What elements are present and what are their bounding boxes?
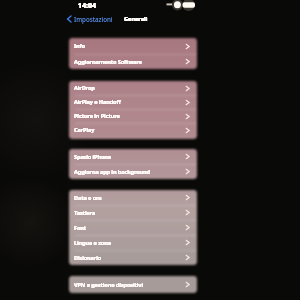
button[interactable]: Tastiera — [69, 205, 197, 220]
staticText: Picture in Picture — [74, 112, 120, 120]
button[interactable]: Impostazioni — [67, 15, 113, 23]
button[interactable]: Picture in Picture — [69, 109, 197, 123]
button[interactable]: Info — [69, 38, 197, 54]
staticText: Tastiera — [74, 209, 96, 217]
staticText: VPN e gestione dispositivi — [74, 281, 143, 289]
staticText: Generali — [124, 15, 148, 23]
button[interactable]: VPN e gestione dispositivi — [69, 276, 197, 293]
other: Status icons — [166, 2, 196, 10]
button[interactable]: CarPlay — [69, 123, 197, 137]
staticText: Aggiornamento Software — [74, 58, 142, 66]
button[interactable]: Data e ora — [69, 190, 197, 205]
staticText: Font — [74, 224, 87, 232]
button[interactable]: Lingua e zona — [69, 235, 197, 250]
staticText: AirDrop — [74, 84, 95, 92]
staticText: AirDrop — [74, 84, 95, 92]
staticText: Dizionario — [74, 254, 102, 262]
staticText: Data e ora — [74, 194, 102, 202]
staticText: Info — [74, 42, 85, 50]
staticText: Lingua e zona — [74, 239, 111, 247]
staticText: Generali — [124, 15, 148, 23]
button[interactable]: Aggiorna app in background — [69, 164, 197, 179]
staticText: Info — [74, 42, 85, 50]
staticText: Aggiorna app in background — [74, 168, 151, 176]
staticText: Aggiornamento Software — [74, 58, 142, 66]
button[interactable]: AirDrop — [69, 81, 197, 95]
staticText: 14:04 — [78, 1, 96, 11]
staticText: Tastiera — [74, 209, 96, 217]
button[interactable]: Spazio iPhone — [69, 149, 197, 164]
staticText: Spazio iPhone — [74, 153, 112, 161]
staticText: AirPlay e Handoff — [74, 98, 121, 106]
staticText: Impostazioni — [74, 15, 113, 23]
staticText: CarPlay — [74, 126, 95, 134]
staticText: Lingua e zona — [74, 239, 111, 247]
button[interactable]: Font — [69, 220, 197, 235]
staticText: 14:04 — [78, 1, 96, 11]
button[interactable]: Dizionario — [69, 250, 197, 265]
staticText: Generali — [124, 15, 148, 23]
staticText: Aggiorna app in background — [74, 168, 151, 176]
staticText: VPN e gestione dispositivi — [74, 281, 143, 289]
staticText: Spazio iPhone — [74, 153, 112, 161]
staticText: Picture in Picture — [74, 112, 120, 120]
staticText: CarPlay — [74, 126, 95, 134]
button[interactable]: Aggiornamento Software — [69, 54, 197, 69]
staticText: AirPlay e Handoff — [74, 98, 121, 106]
staticText: Font — [74, 224, 87, 232]
staticText: 14:04 — [78, 1, 96, 11]
staticText: Dizionario — [74, 254, 102, 262]
button[interactable]: AirPlay e Handoff — [69, 95, 197, 109]
staticText: Data e ora — [74, 194, 102, 202]
